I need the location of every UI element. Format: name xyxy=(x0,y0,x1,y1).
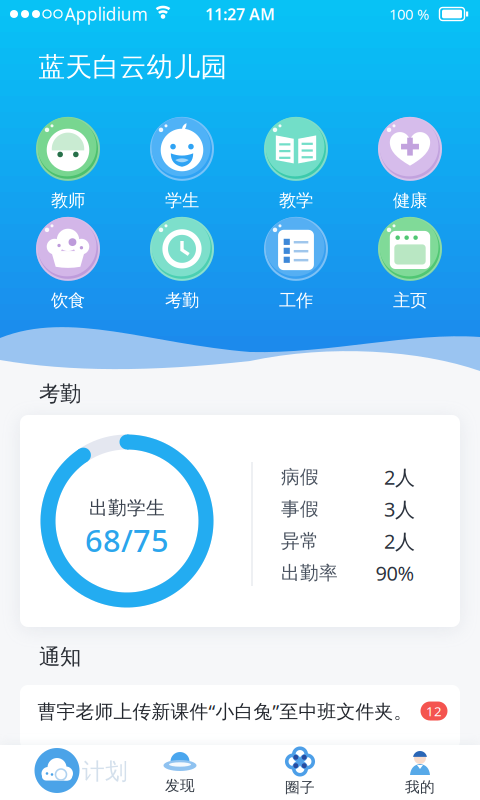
button[interactable]: 计划 xyxy=(0,745,120,800)
staticText: 考勤 xyxy=(165,290,199,311)
staticText: 事假 xyxy=(281,497,319,520)
staticText: 教学 xyxy=(279,190,313,211)
staticText: 100 % xyxy=(389,4,429,24)
staticText: 病假 xyxy=(281,465,319,488)
staticText: 11:27 AM xyxy=(205,3,275,25)
staticText: 12 xyxy=(426,702,442,720)
staticText: 2人 xyxy=(384,464,415,490)
button[interactable]: 圈子 xyxy=(240,745,360,800)
staticText: 出勤学生 xyxy=(89,496,165,519)
staticText: 学生 xyxy=(165,190,199,211)
staticText: 异常 xyxy=(281,529,319,552)
button[interactable]: 工作 xyxy=(243,214,349,314)
button[interactable]: 考勤 xyxy=(129,214,235,314)
button[interactable]: 学生 xyxy=(129,114,235,214)
button[interactable]: 饮食 xyxy=(15,214,121,314)
button[interactable]: 主页 xyxy=(357,214,463,314)
button[interactable]: 发现 xyxy=(120,745,240,800)
staticText: Applidium xyxy=(64,2,147,25)
staticText: 蓝天白云幼儿园 xyxy=(38,51,227,83)
staticText: 教师 xyxy=(51,190,85,211)
staticText: 我的 xyxy=(405,778,435,796)
staticText: 2人 xyxy=(384,528,415,554)
staticText: 曹宇老师上传新课件“小白兔”至中班文件夹。 xyxy=(37,699,412,723)
staticText: 90% xyxy=(375,560,414,586)
staticText: 健康 xyxy=(393,190,427,211)
button[interactable]: 教学 xyxy=(243,114,349,214)
button[interactable]: 健康 xyxy=(357,114,463,214)
staticText: 主页 xyxy=(393,290,427,311)
button[interactable]: 曹宇老师上传新课件“小白兔”至中班文件夹。 xyxy=(20,685,460,749)
staticText: 3人 xyxy=(384,496,415,522)
staticText: 68/75 xyxy=(85,520,169,560)
staticText: 发现 xyxy=(165,776,195,794)
button[interactable]: 我的 xyxy=(360,745,480,800)
staticText: 考勤 xyxy=(39,381,81,407)
button[interactable]: 教师 xyxy=(15,114,121,214)
staticText: 饮食 xyxy=(51,290,85,311)
staticText: 计划 xyxy=(82,758,128,785)
staticText: 通知 xyxy=(39,644,81,670)
staticText: 工作 xyxy=(279,290,313,311)
staticText: 出勤率 xyxy=(281,561,338,584)
staticText: 圈子 xyxy=(285,778,315,796)
